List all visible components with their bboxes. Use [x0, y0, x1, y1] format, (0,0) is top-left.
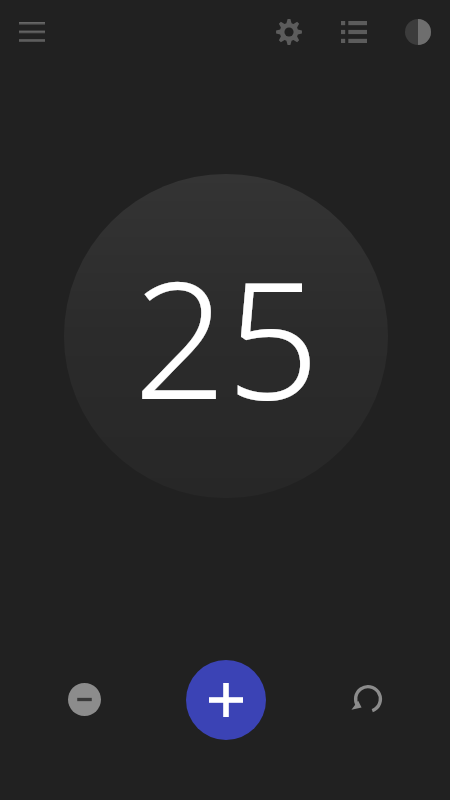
- button[interactable]: Settings: [265, 8, 313, 56]
- button[interactable]: Theme: [394, 8, 442, 56]
- button[interactable]: List: [330, 8, 378, 56]
- button[interactable]: Add: [186, 660, 266, 740]
- button[interactable]: 25: [64, 174, 388, 498]
- button[interactable]: Reset: [344, 675, 392, 723]
- button[interactable]: Menu: [8, 8, 56, 56]
- button[interactable]: Decrease: [60, 675, 108, 723]
- staticText: 25: [133, 225, 320, 447]
